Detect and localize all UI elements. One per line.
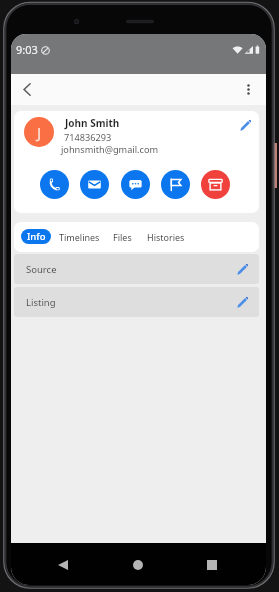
button[interactable]: Back (48, 550, 78, 580)
button[interactable]: Back (14, 76, 41, 103)
staticText: Info (27, 230, 46, 243)
staticText: 9:03 (16, 42, 38, 57)
button[interactable]: Source (14, 254, 259, 284)
button[interactable]: Call (40, 170, 69, 199)
button[interactable]: Message (121, 170, 150, 199)
button[interactable]: Files (113, 229, 132, 245)
staticText: Timelines (59, 231, 100, 243)
button[interactable]: Archive (201, 170, 230, 199)
button[interactable]: Recent apps (197, 550, 227, 580)
button[interactable]: Histories (147, 229, 185, 245)
button[interactable]: Email (80, 170, 109, 199)
button[interactable]: Edit contact (235, 115, 256, 136)
staticText: Source (26, 263, 57, 276)
button[interactable]: More options (235, 76, 262, 103)
staticText: Listing (26, 296, 56, 309)
staticText: 714836293 (64, 131, 112, 144)
button[interactable]: Flag (161, 170, 190, 199)
button[interactable]: Listing (14, 287, 259, 317)
staticText: johnsmith@gmail.com (61, 143, 159, 156)
staticText: John Smith (65, 116, 120, 130)
button[interactable]: Home (123, 550, 153, 580)
staticText: Files (113, 231, 132, 243)
staticText: Histories (147, 231, 185, 243)
button[interactable]: Info (21, 229, 51, 244)
button[interactable]: Timelines (59, 229, 100, 245)
staticText: J (37, 122, 42, 142)
